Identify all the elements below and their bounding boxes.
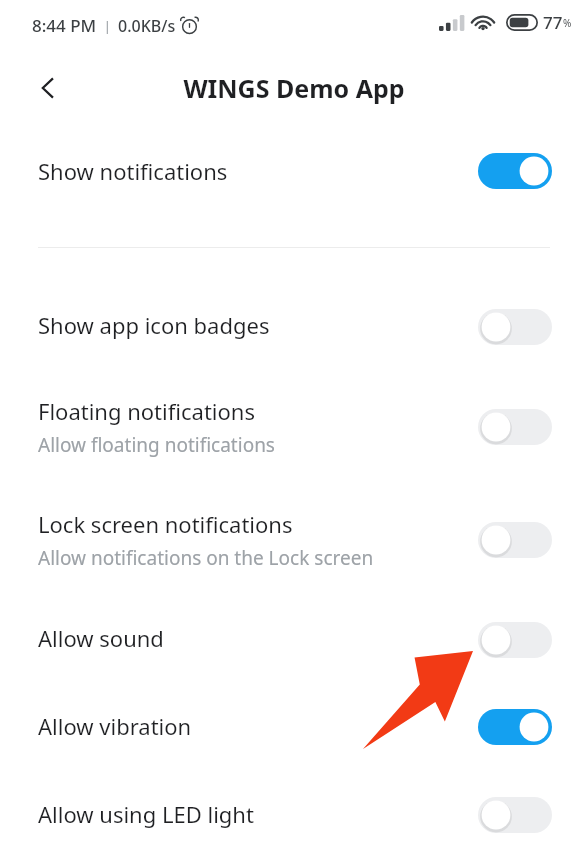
staticText: Show notifications [38, 156, 228, 186]
staticText: Show app icon badges [38, 310, 270, 340]
button[interactable]: Show app icon badges [0, 293, 588, 361]
button[interactable]: Off [478, 409, 552, 445]
button[interactable]: Floating notifications [0, 393, 588, 479]
staticText: Allow floating notifications [38, 432, 275, 458]
button[interactable]: Off [478, 622, 552, 658]
staticText: Floating notifications [38, 396, 255, 426]
button[interactable]: Lock screen notifications [0, 506, 588, 592]
button[interactable]: Allow using LED light [0, 781, 588, 849]
staticText: Allow using LED light [38, 799, 254, 829]
button[interactable]: Show notifications [0, 137, 588, 205]
staticText: % [563, 16, 572, 30]
staticText: Allow notifications on the Lock screen [38, 545, 374, 571]
staticText: WINGS Demo App [183, 71, 405, 105]
staticText: 0.0KB/s [118, 15, 176, 37]
button[interactable]: Off [478, 797, 552, 833]
staticText: 8:44 PM [32, 14, 97, 37]
button[interactable]: Allow vibration [0, 693, 588, 761]
staticText: | [97, 17, 118, 35]
staticText: 77 [543, 11, 563, 34]
button[interactable]: On [478, 153, 552, 189]
button[interactable]: Back [20, 60, 76, 116]
button[interactable]: Off [478, 522, 552, 558]
button[interactable]: Allow sound [0, 606, 588, 674]
staticText: Allow vibration [38, 711, 192, 741]
button[interactable]: On [478, 709, 552, 745]
staticText: Allow sound [38, 623, 164, 653]
button[interactable]: Off [478, 309, 552, 345]
staticText: Lock screen notifications [38, 509, 293, 539]
